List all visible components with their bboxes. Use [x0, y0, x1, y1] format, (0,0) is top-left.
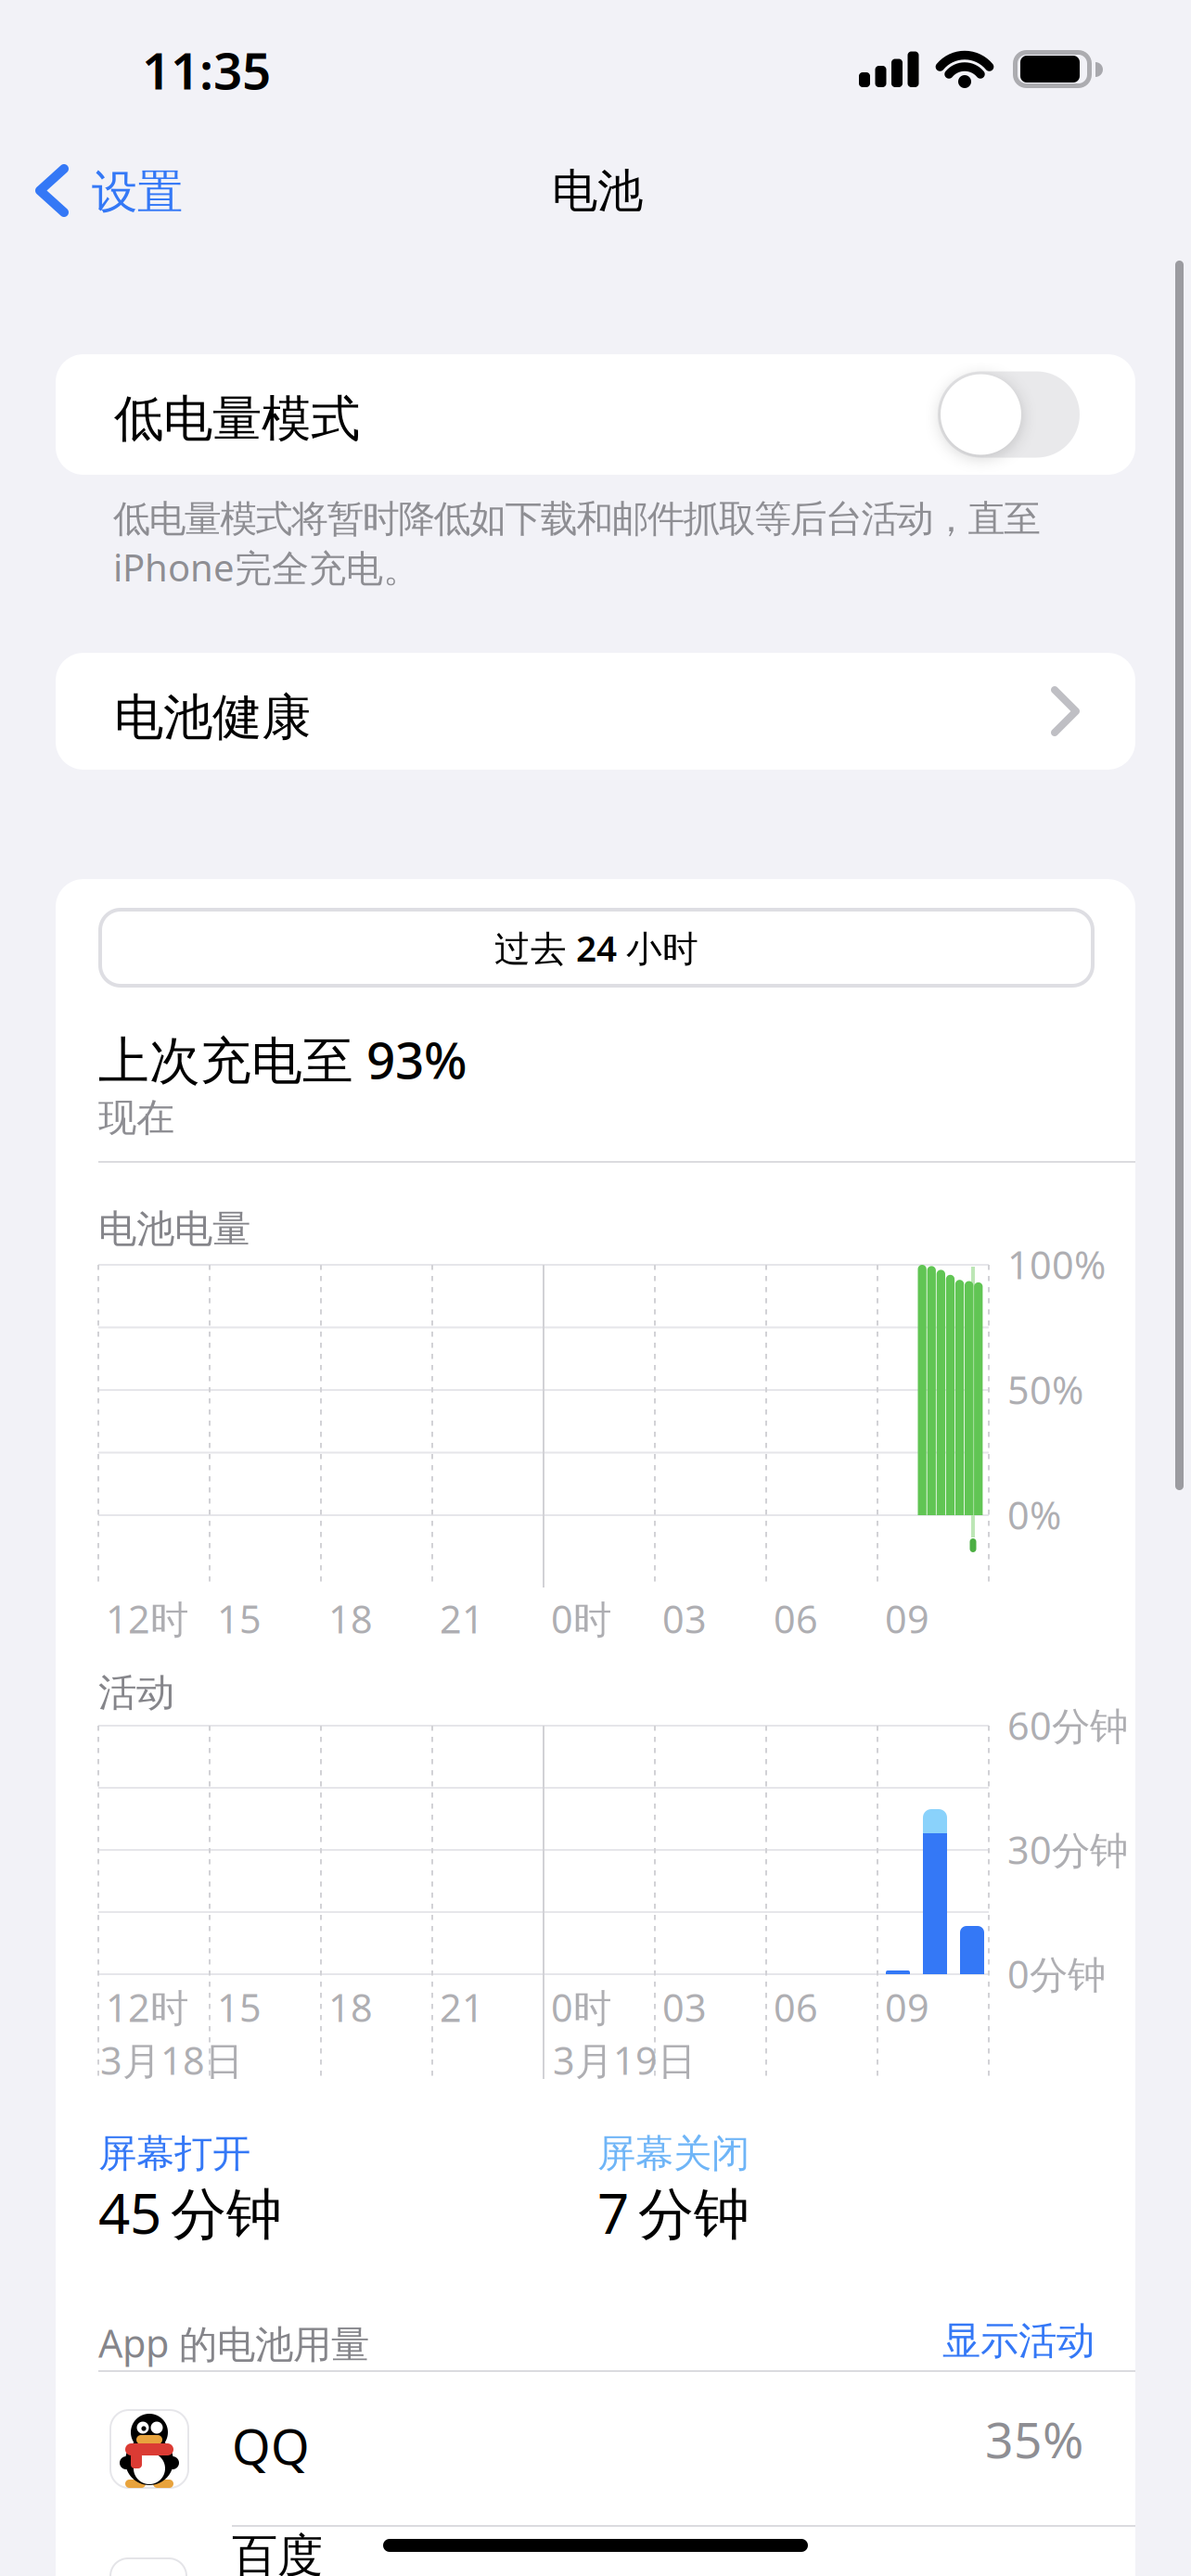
- staticText: 电池: [552, 163, 643, 219]
- staticText: 0分钟: [1007, 1948, 1106, 1999]
- staticText: 09: [885, 1982, 929, 2033]
- staticText: 45 分钟: [98, 2175, 282, 2249]
- button[interactable]: 电池健康: [56, 653, 1135, 770]
- staticText: 21: [440, 1982, 484, 2033]
- staticText: 屏幕关闭: [597, 2130, 749, 2177]
- button[interactable]: 百度: [56, 2528, 1135, 2576]
- staticText: 电池电量: [98, 1205, 250, 1253]
- staticText: 显示活动: [942, 2317, 1095, 2364]
- staticText: 30分钟: [1007, 1824, 1128, 1875]
- staticText: 12时: [106, 1593, 188, 1644]
- staticText: 设置: [92, 164, 183, 220]
- staticText: iPhone完全充电。: [113, 542, 420, 592]
- staticText: 过去 24 小时: [494, 924, 698, 971]
- button[interactable]: 低电量模式: [56, 354, 1135, 475]
- staticText: App 的电池用量: [98, 2317, 369, 2368]
- staticText: 09: [885, 1593, 929, 1644]
- staticText: 11:35: [142, 36, 271, 103]
- staticText: 百度: [232, 2528, 323, 2576]
- staticText: 3月18日: [100, 2034, 243, 2085]
- staticText: 03: [662, 1982, 707, 2033]
- staticText: 0%: [1007, 1489, 1061, 1540]
- staticText: 低电量模式将暂时降低如下载和邮件抓取等后台活动，直至: [113, 496, 1041, 542]
- staticText: 50%: [1007, 1364, 1083, 1415]
- staticText: 低电量模式: [114, 389, 360, 449]
- button[interactable]: 过去 24 小时: [98, 908, 1095, 988]
- button[interactable]: 设置: [34, 158, 211, 224]
- staticText: 12时: [106, 1982, 188, 2033]
- staticText: 18: [328, 1593, 373, 1644]
- staticText: 屏幕打开: [98, 2130, 250, 2177]
- staticText: 7 分钟: [597, 2175, 749, 2249]
- staticText: 06: [774, 1982, 818, 2033]
- staticText: 35%: [985, 2406, 1083, 2472]
- staticText: 现在: [98, 1094, 174, 1141]
- staticText: 0时: [551, 1593, 611, 1644]
- staticText: QQ: [232, 2413, 310, 2478]
- staticText: 活动: [98, 1669, 174, 1716]
- button[interactable]: 显示活动: [816, 2317, 1095, 2364]
- staticText: 21: [440, 1593, 484, 1644]
- staticText: 0时: [551, 1982, 611, 2033]
- staticText: 06: [774, 1593, 818, 1644]
- staticText: 100%: [1007, 1239, 1106, 1290]
- staticText: 3月19日: [553, 2034, 696, 2085]
- staticText: 18: [328, 1982, 373, 2033]
- staticText: 电池健康: [114, 687, 311, 748]
- staticText: 15: [217, 1982, 262, 2033]
- staticText: 15: [217, 1593, 262, 1644]
- staticText: 60分钟: [1007, 1700, 1128, 1751]
- staticText: 上次充电至 93%: [98, 1026, 467, 1093]
- staticText: 03: [662, 1593, 707, 1644]
- button[interactable]: QQ: [56, 2370, 1135, 2524]
